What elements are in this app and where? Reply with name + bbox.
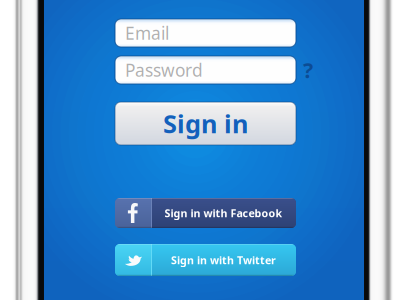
staticText: Email: [125, 21, 169, 44]
staticText: Sign in with Facebook: [164, 206, 282, 220]
staticText: Sign in: [163, 107, 248, 140]
button[interactable]: Sign in: [115, 102, 296, 145]
button[interactable]: Password help: [298, 58, 318, 82]
staticText: Sign in with Twitter: [171, 253, 276, 267]
button[interactable]: Email: [115, 19, 296, 47]
button[interactable]: Sign in with Twitter: [115, 244, 296, 276]
staticText: Password: [125, 58, 203, 81]
button[interactable]: Password: [115, 56, 296, 84]
button[interactable]: Sign in with Facebook: [115, 198, 296, 228]
staticText: ?: [303, 56, 313, 84]
